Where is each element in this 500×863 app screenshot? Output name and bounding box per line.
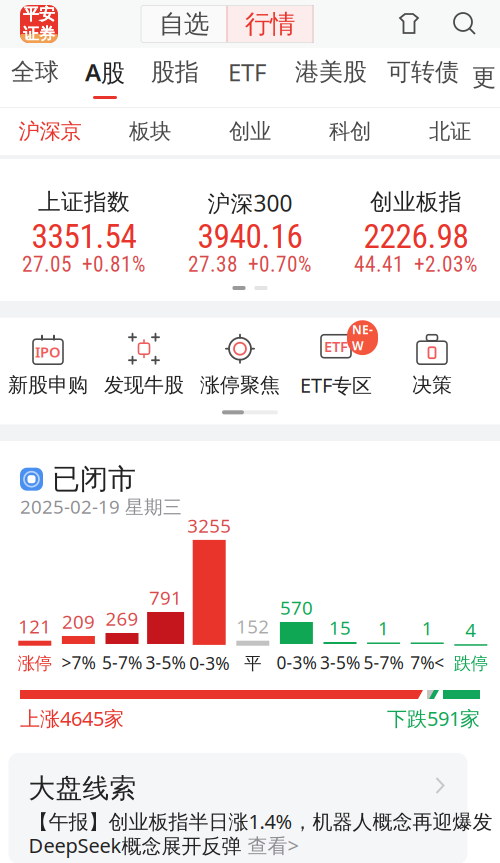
- staticText: 决策: [412, 373, 452, 397]
- staticText: 3255: [187, 513, 231, 538]
- staticText: 上证指数: [38, 188, 130, 216]
- button[interactable]: Search: [452, 11, 478, 37]
- staticText: 科创: [329, 118, 371, 145]
- staticText: ETF专区: [300, 372, 372, 398]
- staticText: 创业: [229, 118, 271, 145]
- staticText: 平安: [23, 4, 55, 24]
- staticText: 沪深京: [18, 118, 81, 145]
- staticText: 平安: [23, 4, 55, 24]
- staticText: 证券: [23, 24, 55, 44]
- button[interactable]: 全球: [10, 48, 60, 107]
- button[interactable]: 上证指数: [1, 188, 167, 274]
- staticText: 板块: [129, 118, 171, 145]
- staticText: 791: [149, 585, 182, 610]
- staticText: 查看>: [247, 832, 298, 859]
- button[interactable]: 创业板指: [333, 188, 499, 274]
- button[interactable]: 板块: [100, 108, 200, 155]
- button[interactable]: 可转债: [388, 48, 458, 107]
- button[interactable]: IPO: [0, 332, 96, 397]
- button[interactable]: 决策: [384, 332, 480, 397]
- staticText: 创业板指: [370, 188, 462, 216]
- staticText: +2.03%: [414, 252, 478, 277]
- staticText: 【午报】创业板指半日涨1.4%，机器人概念再迎爆发，: [28, 808, 500, 835]
- staticText: 269: [105, 606, 138, 631]
- button[interactable]: 涨停聚焦: [192, 332, 288, 397]
- staticText: 可转债: [387, 57, 459, 87]
- staticText: 2226.98: [363, 217, 468, 256]
- staticText: 5-7%: [364, 651, 404, 674]
- staticText: 大盘线索: [28, 772, 136, 805]
- staticText: 121: [18, 614, 51, 639]
- staticText: A股: [85, 56, 125, 88]
- button[interactable]: 沪深京: [0, 108, 100, 155]
- staticText: IPO: [35, 342, 61, 361]
- staticText: 3940.16: [197, 217, 302, 256]
- button[interactable]: 股指: [150, 48, 200, 107]
- staticText: 港美股: [295, 57, 367, 87]
- staticText: 新股申购: [8, 373, 88, 397]
- staticText: ETF: [324, 336, 348, 356]
- staticText: 2025-02-19 星期三: [20, 494, 182, 519]
- button[interactable]: 创业: [200, 108, 300, 155]
- button[interactable]: 大盘线索: [21, 753, 480, 863]
- staticText: 证券: [23, 24, 55, 44]
- staticText: 上涨4645家: [20, 705, 124, 732]
- staticText: 0-3%: [189, 652, 229, 675]
- button[interactable]: 港美股: [296, 48, 366, 107]
- button[interactable]: 自选: [141, 5, 227, 42]
- button[interactable]: 沪深300: [167, 188, 333, 274]
- staticText: 涨停聚焦: [200, 373, 280, 397]
- staticText: 152: [236, 614, 269, 639]
- button[interactable]: 北证: [400, 108, 500, 155]
- staticText: 自选: [159, 8, 209, 39]
- staticText: DeepSeek概念展开反弹: [28, 832, 247, 859]
- staticText: 沪深300: [207, 188, 292, 218]
- staticText: +0.70%: [248, 252, 312, 277]
- staticText: NEW: [352, 322, 373, 354]
- staticText: 全球: [11, 57, 59, 87]
- staticText: 209: [62, 609, 95, 634]
- staticText: >7%: [61, 651, 95, 674]
- staticText: +0.81%: [82, 252, 146, 277]
- button[interactable]: 发现牛股: [96, 332, 192, 397]
- staticText: 1: [378, 616, 389, 640]
- staticText: 5-7%: [102, 651, 142, 674]
- staticText: 下跌591家: [387, 705, 480, 732]
- staticText: 已闭市: [52, 462, 136, 496]
- staticText: 涨停: [18, 653, 52, 674]
- button[interactable]: 平安证券: [0, 4, 58, 44]
- button[interactable]: Theme: [396, 11, 422, 37]
- button[interactable]: ETF: [222, 48, 272, 107]
- button[interactable]: 科创: [300, 108, 400, 155]
- staticText: 7%<: [410, 651, 444, 674]
- staticText: 0-3%: [276, 651, 316, 674]
- staticText: 行情: [245, 8, 295, 39]
- staticText: 3351.54: [31, 217, 136, 256]
- staticText: 跌停: [454, 653, 488, 674]
- staticText: ETF: [228, 56, 266, 88]
- staticText: 3-5%: [146, 651, 186, 674]
- staticText: 15: [329, 615, 351, 640]
- staticText: 27.38: [188, 252, 238, 277]
- staticText: 平: [244, 653, 261, 674]
- staticText: 4: [465, 617, 476, 642]
- staticText: 北证: [429, 118, 471, 145]
- button[interactable]: ETF: [288, 331, 384, 398]
- staticText: 1: [422, 616, 433, 640]
- staticText: 27.05: [22, 252, 72, 277]
- staticText: 570: [280, 595, 313, 620]
- staticText: 发现牛股: [104, 373, 184, 397]
- staticText: 3-5%: [320, 651, 360, 674]
- button[interactable]: A股: [80, 48, 130, 107]
- button[interactable]: 行情: [227, 5, 313, 42]
- staticText: 更: [472, 63, 496, 92]
- button[interactable]: 更: [468, 48, 500, 107]
- staticText: 44.41: [354, 252, 404, 277]
- staticText: 股指: [151, 57, 199, 87]
